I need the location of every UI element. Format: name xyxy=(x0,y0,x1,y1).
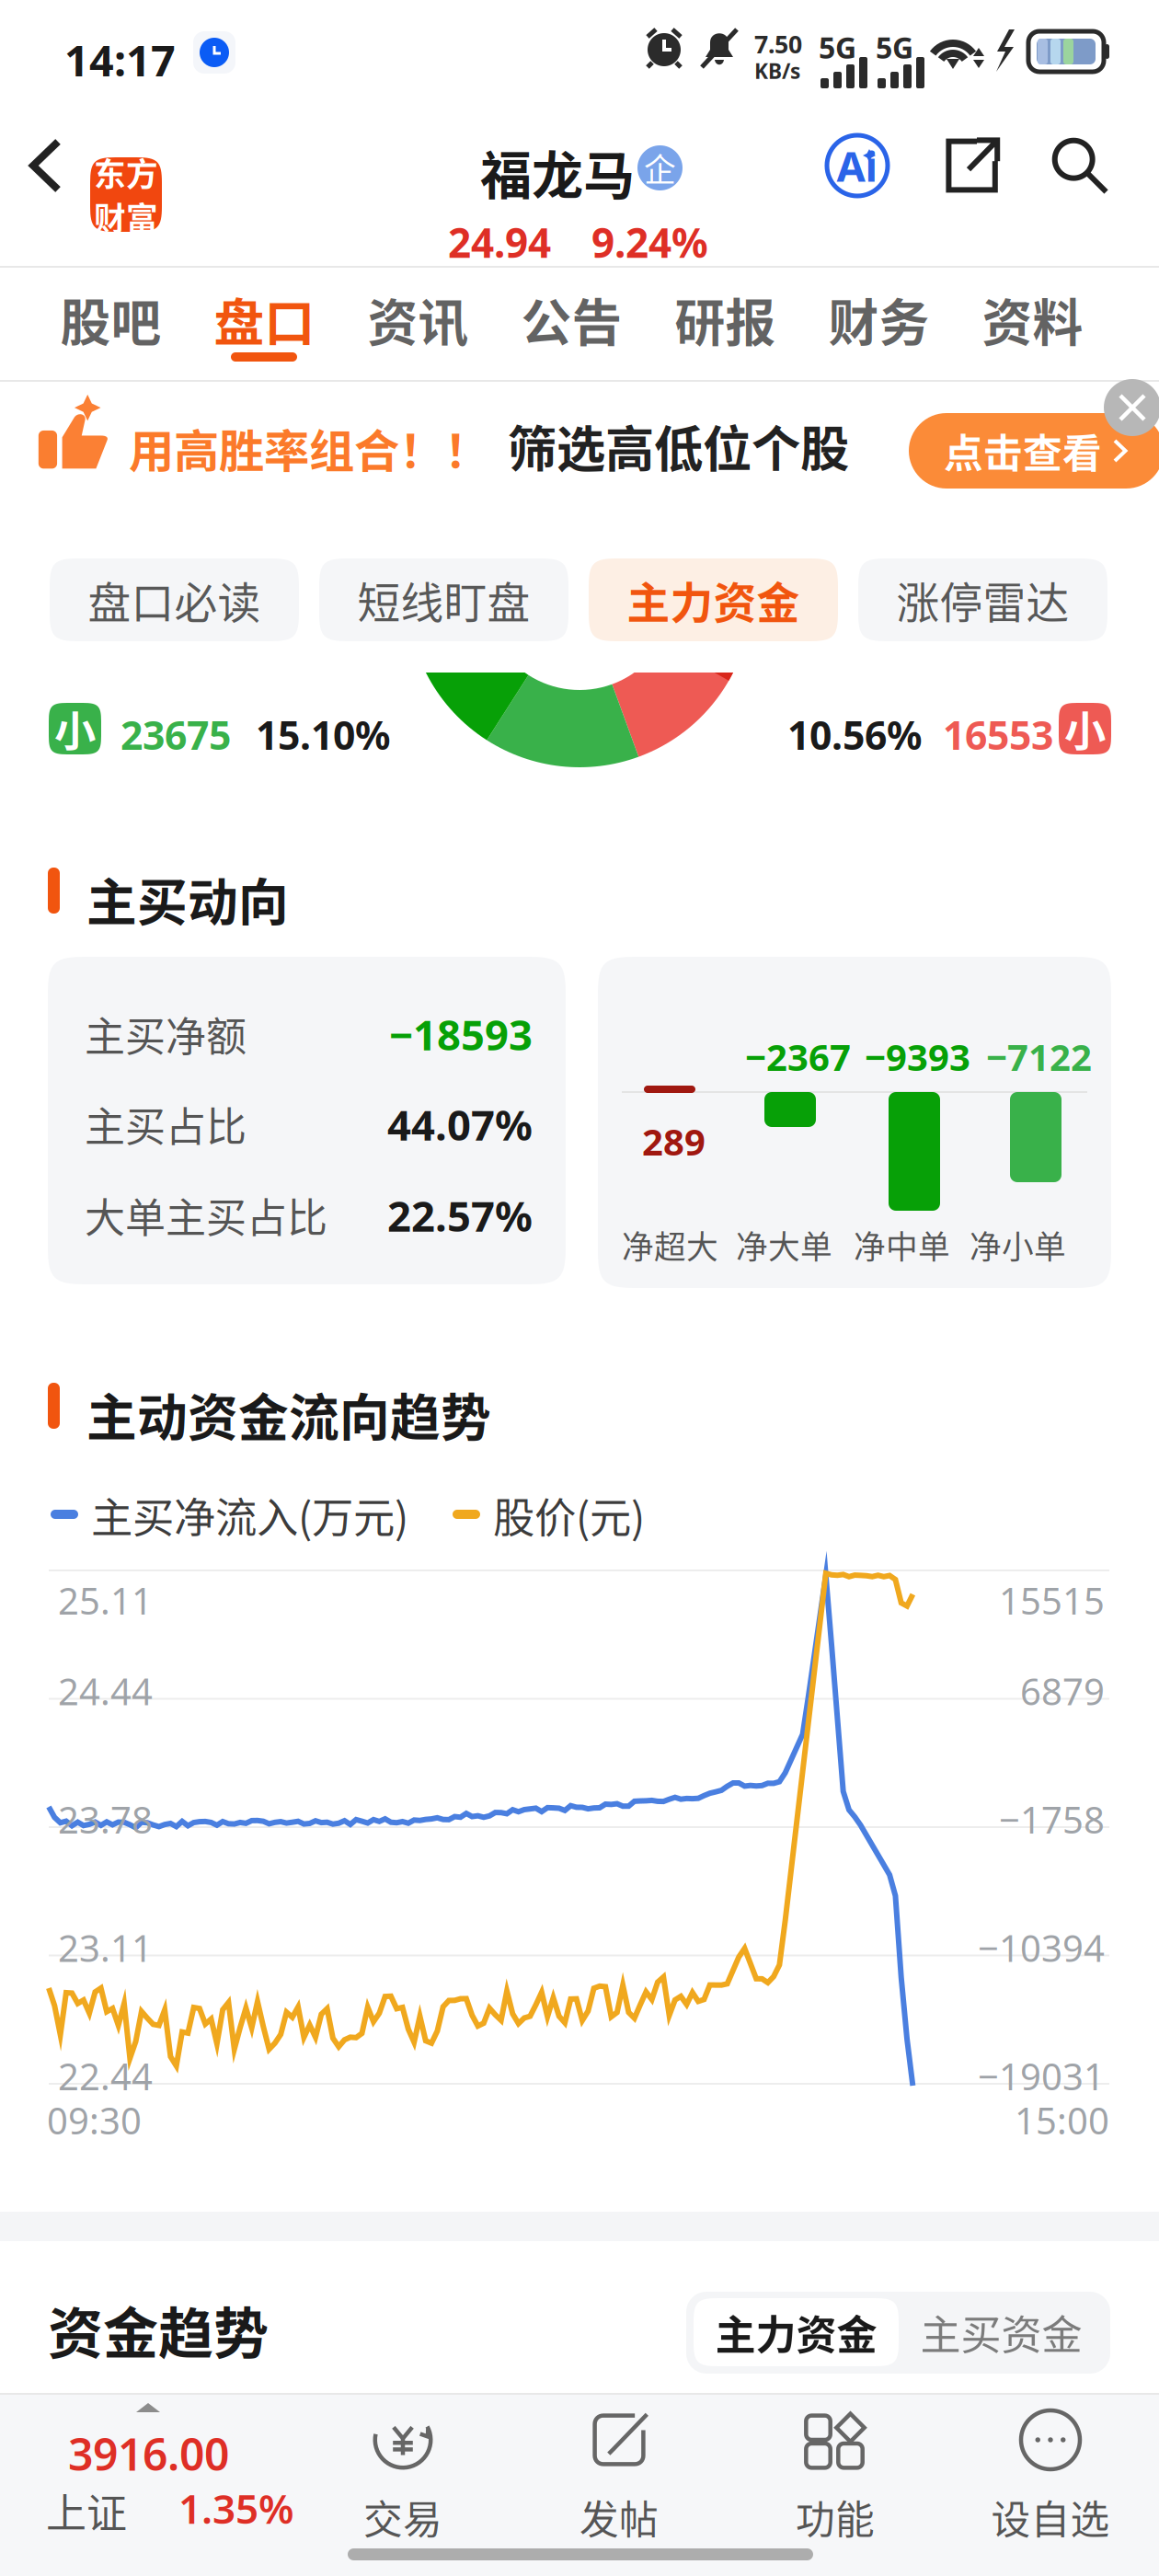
staticText: 44.07% xyxy=(387,1097,533,1152)
button[interactable]: East Money home xyxy=(0,103,72,178)
staticText: 净大单 xyxy=(736,1222,832,1268)
staticText: 主动资金流向趋势 xyxy=(86,1377,491,1450)
staticText: 股价(元) xyxy=(493,1485,645,1545)
button[interactable]: Back xyxy=(0,103,85,195)
staticText: 24.94 xyxy=(448,215,551,269)
staticText: 15515 xyxy=(999,1576,1105,1625)
button[interactable]: 盘口 xyxy=(188,268,341,380)
staticText: 6879 xyxy=(1020,1667,1105,1715)
button[interactable]: 研报 xyxy=(648,268,802,380)
staticText: −9393 xyxy=(865,1032,970,1081)
button[interactable]: Close banner xyxy=(0,382,57,439)
staticText: 1.35% xyxy=(178,2481,294,2535)
staticText: −2367 xyxy=(745,1032,851,1081)
staticText: 涨停雷达 xyxy=(896,569,1069,631)
staticText: 设自选 xyxy=(991,2489,1110,2545)
button[interactable]: Share xyxy=(935,129,1008,202)
staticText: 15:00 xyxy=(1015,2096,1109,2145)
staticText: 主买净额 xyxy=(85,1005,247,1063)
staticText: 研报 xyxy=(675,282,776,355)
button[interactable]: 涨停雷达 xyxy=(858,558,1107,641)
staticText: 主力资金 xyxy=(715,2303,877,2361)
staticText: 主买占比 xyxy=(85,1095,247,1153)
staticText: 3916.00 xyxy=(68,2424,229,2483)
staticText: 短线盯盘 xyxy=(357,569,530,631)
staticText: 22.57% xyxy=(387,1188,533,1243)
staticText: 净小单 xyxy=(970,1222,1066,1268)
staticText: 企 xyxy=(644,145,676,191)
staticText: 14:17 xyxy=(64,31,176,88)
staticText: 24.44 xyxy=(58,1667,153,1715)
staticText: 22.44 xyxy=(58,2052,153,2100)
staticText: 23.78 xyxy=(58,1795,153,1844)
staticText: 小 xyxy=(1064,698,1106,759)
button[interactable]: 资讯 xyxy=(341,268,495,380)
staticText: 主买资金 xyxy=(920,2303,1082,2361)
staticText: 用高胜率组合！！ xyxy=(129,415,489,481)
staticText: 16553 xyxy=(943,708,1053,761)
staticText: 财务 xyxy=(828,282,929,355)
button[interactable]: 主力资金 xyxy=(686,2292,891,2360)
staticText: 7.50 xyxy=(754,28,802,60)
staticText: 资讯 xyxy=(367,282,469,355)
staticText: 10.56% xyxy=(787,708,922,761)
button[interactable]: Shanghai Composite index xyxy=(0,2393,313,2555)
staticText: 盘口 xyxy=(214,282,315,355)
staticText: 功能 xyxy=(796,2489,875,2545)
button[interactable]: Search xyxy=(1043,129,1117,202)
button[interactable]: 财务 xyxy=(802,268,956,380)
staticText: 主买动向 xyxy=(86,862,289,935)
staticText: 净超大 xyxy=(622,1222,718,1268)
staticText: 大单主买占比 xyxy=(85,1186,327,1244)
staticText: 盘口必读 xyxy=(88,569,261,631)
staticText: 5G xyxy=(819,28,856,67)
staticText: 9.24% xyxy=(591,215,708,269)
button[interactable]: 发帖 xyxy=(0,2393,212,2551)
button[interactable]: 功能 xyxy=(0,2393,212,2551)
staticText: 筛选高低位个股 xyxy=(508,410,849,481)
staticText: −19031 xyxy=(978,2052,1105,2100)
staticText: 股吧 xyxy=(60,282,161,355)
button[interactable]: 公告 xyxy=(495,268,648,380)
button[interactable]: 主力资金 xyxy=(589,558,838,641)
staticText: 5G xyxy=(876,28,913,67)
staticText: 主买净流入(万元) xyxy=(91,1485,408,1545)
staticText: 小 xyxy=(54,698,96,759)
staticText: Ai xyxy=(837,138,878,193)
staticText: 财富 xyxy=(94,194,158,240)
staticText: 上证 xyxy=(46,2481,127,2540)
staticText: −7122 xyxy=(986,1032,1092,1081)
staticText: 发帖 xyxy=(579,2489,659,2545)
button[interactable]: AI assistant xyxy=(820,129,894,202)
staticText: 主力资金 xyxy=(627,569,800,631)
staticText: 净中单 xyxy=(854,1222,950,1268)
staticText: 289 xyxy=(642,1117,706,1166)
button[interactable]: 用高胜率组合！！ xyxy=(0,382,1159,501)
staticText: 23675 xyxy=(120,708,231,761)
staticText: −10394 xyxy=(978,1923,1105,1972)
staticText: 15.10% xyxy=(256,708,390,761)
button[interactable]: 盘口必读 xyxy=(50,558,299,641)
staticText: −1758 xyxy=(999,1795,1105,1844)
button[interactable]: 资料 xyxy=(956,268,1109,380)
staticText: 资料 xyxy=(982,282,1083,355)
staticText: 23.11 xyxy=(58,1923,153,1972)
button[interactable]: 设自选 xyxy=(0,2393,212,2551)
staticText: KB/s xyxy=(754,57,800,85)
staticText: 公告 xyxy=(521,282,622,355)
staticText: 点击查看 xyxy=(944,422,1102,479)
staticText: 东方 xyxy=(94,149,158,195)
staticText: 资金趋势 xyxy=(48,2290,269,2370)
staticText: 09:30 xyxy=(47,2096,142,2145)
button[interactable]: 主买资金 xyxy=(686,2292,891,2360)
staticText: −18593 xyxy=(389,1006,533,1062)
staticText: 交易 xyxy=(363,2489,442,2545)
staticText: 福龙马 xyxy=(480,134,635,209)
staticText: 25.11 xyxy=(58,1576,153,1625)
button[interactable]: 交易 xyxy=(0,2393,212,2551)
button[interactable]: 股吧 xyxy=(34,268,188,380)
button[interactable]: 短线盯盘 xyxy=(319,558,568,641)
